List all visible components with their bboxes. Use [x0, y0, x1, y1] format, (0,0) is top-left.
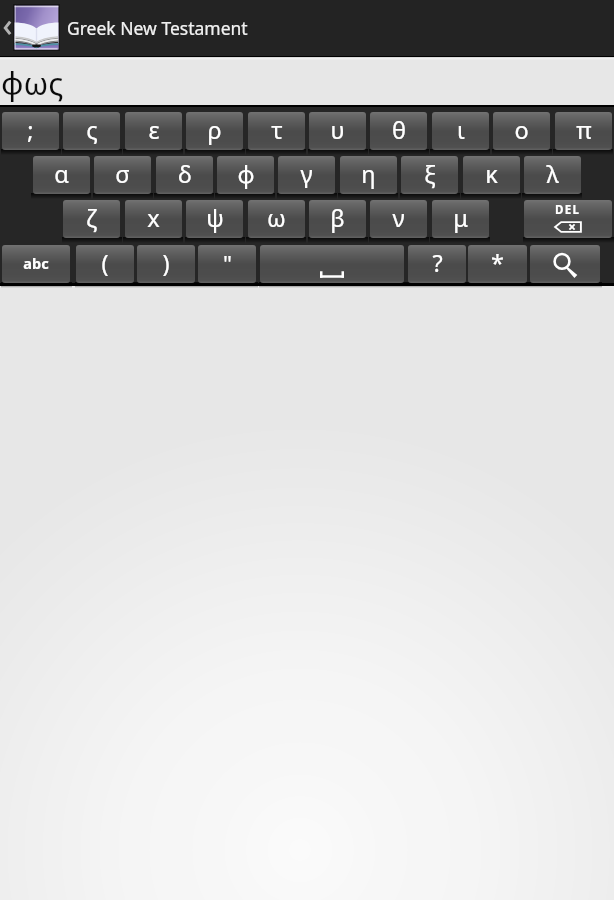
button[interactable]: ν — [370, 200, 427, 238]
staticText: ξ — [424, 158, 436, 190]
staticText: ? — [432, 247, 443, 279]
button[interactable]: Delete — [524, 200, 612, 238]
button[interactable]: abc — [2, 245, 70, 283]
staticText: Greek New Testament — [67, 16, 248, 40]
button[interactable]: υ — [309, 112, 366, 150]
staticText: α — [54, 158, 69, 190]
button[interactable]: Search — [530, 245, 600, 283]
button[interactable]: ω — [248, 200, 305, 238]
staticText: ι — [457, 114, 465, 146]
button[interactable]: ο — [493, 112, 550, 150]
staticText: ) — [162, 247, 170, 279]
staticText: β — [330, 202, 345, 234]
staticText: ο — [514, 114, 529, 146]
button[interactable]: ) — [137, 245, 195, 283]
staticText: ψ — [206, 202, 224, 234]
button[interactable]: σ — [94, 156, 151, 194]
button[interactable]: β — [309, 200, 366, 238]
button[interactable]: ζ — [63, 200, 120, 238]
button[interactable]: θ — [370, 112, 427, 150]
staticText: η — [361, 158, 376, 190]
staticText: κ — [485, 158, 498, 190]
button[interactable]: Space — [260, 245, 404, 283]
staticText: ω — [267, 202, 286, 234]
button[interactable]: ξ — [401, 156, 458, 194]
staticText: δ — [178, 158, 192, 190]
button[interactable]: η — [340, 156, 397, 194]
button[interactable]: * — [468, 245, 527, 283]
button[interactable]: ; — [2, 112, 59, 150]
button[interactable]: φ — [217, 156, 274, 194]
button[interactable]: ρ — [186, 112, 243, 150]
staticText: DEL — [555, 202, 581, 218]
staticText: γ — [300, 158, 313, 190]
button[interactable]: λ — [524, 156, 581, 194]
staticText: μ — [453, 202, 468, 234]
staticText: " — [223, 248, 232, 278]
staticText: ( — [101, 247, 109, 279]
staticText: τ — [271, 114, 283, 146]
button[interactable]: δ — [156, 156, 213, 194]
button[interactable]: τ — [248, 112, 305, 150]
button[interactable]: ι — [432, 112, 489, 150]
staticText: λ — [546, 158, 559, 190]
button[interactable]: " — [198, 245, 256, 283]
button[interactable]: x — [125, 200, 182, 238]
button[interactable]: α — [33, 156, 90, 194]
button[interactable]: γ — [278, 156, 335, 194]
button[interactable]: μ — [432, 200, 489, 238]
staticText: x — [147, 202, 160, 234]
button[interactable]: π — [555, 112, 612, 150]
button[interactable]: φως — [0, 56, 614, 105]
staticText: * — [491, 247, 504, 279]
staticText: π — [576, 114, 592, 146]
staticText: σ — [115, 158, 130, 190]
staticText: ; — [27, 114, 34, 146]
staticText: ζ — [86, 202, 97, 234]
button[interactable]: Back — [0, 0, 13, 56]
staticText: φ — [237, 158, 255, 190]
staticText: ς — [86, 114, 98, 146]
staticText: ρ — [207, 114, 222, 146]
button[interactable]: ε — [125, 112, 182, 150]
button[interactable]: ? — [408, 245, 466, 283]
button[interactable]: ψ — [186, 200, 243, 238]
staticText: ν — [392, 202, 405, 234]
staticText: ε — [148, 114, 160, 146]
button[interactable]: ( — [76, 245, 134, 283]
staticText: θ — [392, 114, 406, 146]
button[interactable]: ς — [63, 112, 120, 150]
staticText: φως — [1, 62, 64, 104]
staticText: υ — [330, 114, 345, 146]
button[interactable]: κ — [463, 156, 520, 194]
staticText: abc — [23, 253, 49, 273]
